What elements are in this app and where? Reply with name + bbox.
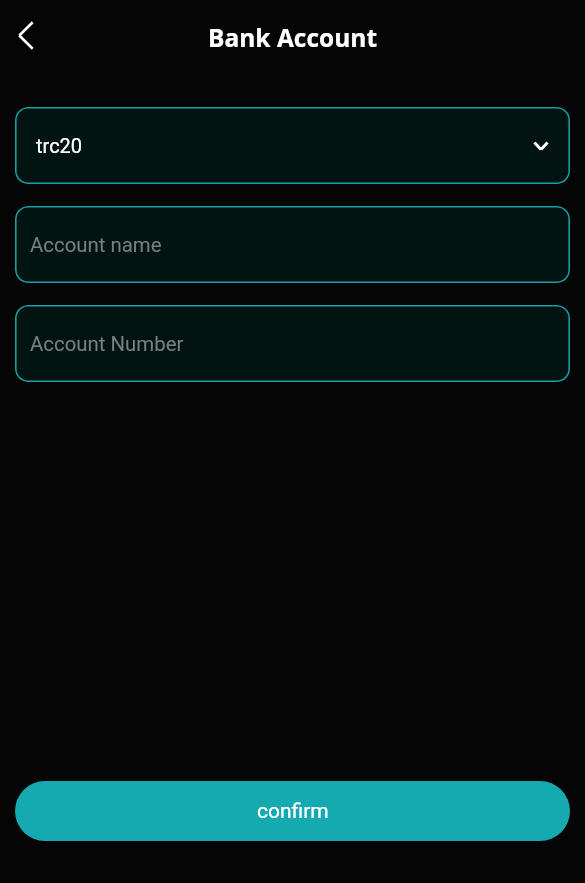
staticText: confirm — [257, 799, 329, 824]
staticText: Bank Account — [208, 21, 378, 54]
staticText: Account name — [30, 233, 162, 257]
staticText: Account Number — [30, 332, 184, 356]
other: Expand network list — [533, 141, 549, 151]
button[interactable]: Back — [3, 12, 49, 58]
staticText: trc20 — [36, 134, 83, 157]
button[interactable]: Account Number — [15, 305, 570, 382]
button[interactable]: trc20 — [15, 107, 570, 184]
button[interactable]: Account name — [15, 206, 570, 283]
button[interactable]: confirm — [15, 781, 570, 841]
